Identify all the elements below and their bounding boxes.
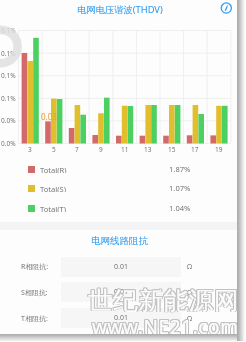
staticText: R相阻抗:	[21, 262, 49, 272]
staticText: www.NE21.com	[93, 314, 240, 340]
staticText: 0.01	[114, 262, 128, 272]
staticText: www.NE21.com	[92, 314, 239, 340]
staticText: 9	[99, 145, 103, 154]
staticText: 7	[75, 145, 79, 154]
staticText: 1.04%	[169, 203, 191, 213]
staticText: 电网线路阻抗	[91, 235, 148, 247]
staticText: 0.1%	[1, 94, 16, 103]
staticText: 5	[52, 145, 56, 154]
staticText: 世纪新能源网	[87, 285, 239, 316]
staticText: T相阻抗:	[21, 314, 48, 324]
button[interactable]: Total(T)	[28, 204, 67, 212]
staticText: www.NE21.com	[91, 314, 238, 340]
staticText: 19	[215, 145, 223, 154]
staticText: 世纪新能源网	[87, 284, 239, 315]
staticText: www.NE21.com	[92, 314, 239, 340]
staticText: Ω	[187, 262, 193, 272]
staticText: Total(R)	[40, 165, 67, 173]
staticText: 0.1%	[1, 26, 16, 35]
staticText: 世纪新能源网	[89, 285, 241, 316]
staticText: 0.01	[114, 287, 128, 297]
staticText: 1.07%	[169, 183, 191, 193]
staticText: Ω	[187, 314, 193, 324]
staticText: 0.0%	[1, 139, 16, 148]
staticText: 世纪新能源网	[88, 285, 240, 316]
staticText: www.NE21.com	[91, 314, 238, 340]
staticText: 0.1%	[1, 71, 16, 80]
staticText: 0.1%	[1, 49, 16, 58]
staticText: 世纪新能源网	[89, 285, 241, 316]
staticText: 世纪新能源网	[88, 284, 240, 315]
staticText: Total(T)	[40, 204, 67, 212]
staticText: 世纪新能源网	[88, 285, 240, 316]
staticText: 世纪新能源网	[87, 285, 239, 316]
staticText: 0.0%	[1, 116, 16, 125]
button[interactable]: 0.01	[61, 282, 181, 302]
staticText: Total(S)	[40, 184, 66, 192]
staticText: 电网电压谐波(THDV)	[77, 3, 163, 16]
button[interactable]: 0.01	[61, 257, 181, 277]
staticText: www.NE21.com	[93, 314, 240, 340]
staticText: 0.03	[41, 111, 57, 122]
button[interactable]: Total(R)	[28, 165, 67, 173]
staticText: 1.87%	[169, 164, 191, 174]
staticText: 15	[168, 145, 176, 154]
staticText: 0.01	[114, 313, 128, 323]
staticText: S相阻抗:	[21, 288, 48, 298]
button[interactable]: Total(S)	[28, 184, 66, 192]
staticText: 11	[121, 145, 129, 154]
staticText: www.NE21.com	[92, 313, 239, 339]
staticText: www.NE21.com	[91, 313, 238, 339]
staticText: 13	[144, 145, 152, 154]
staticText: 3	[28, 145, 32, 154]
staticText: 17	[191, 145, 199, 154]
button[interactable]: 0.01	[61, 308, 181, 328]
staticText: Ω	[187, 288, 193, 298]
button[interactable]: Info	[217, 0, 235, 18]
staticText: 世纪新能源网	[89, 284, 241, 315]
staticText: www.NE21.com	[93, 313, 240, 339]
